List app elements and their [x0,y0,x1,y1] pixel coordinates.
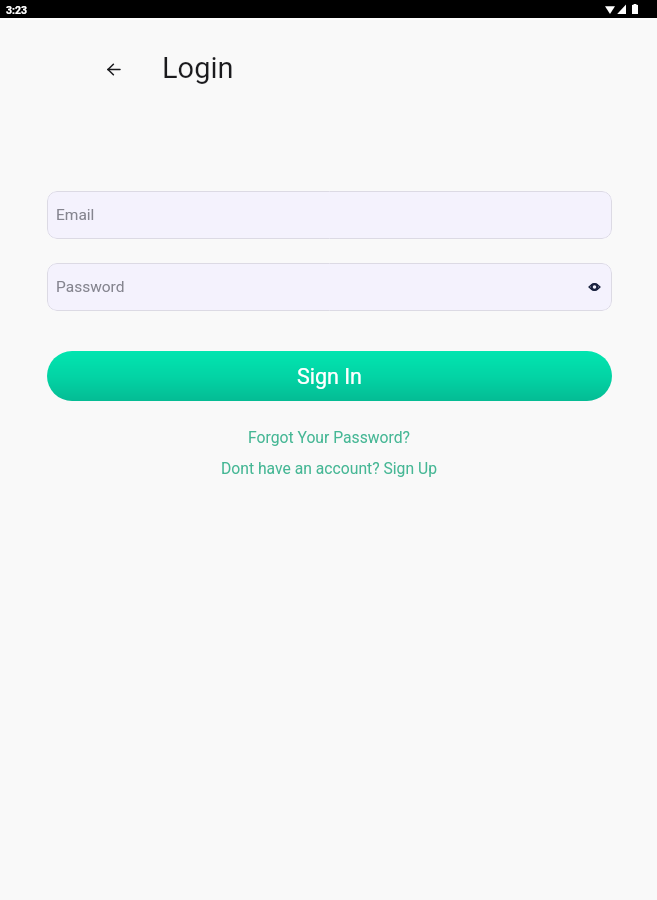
staticText: Dont have an account? Sign Up [221,459,437,477]
staticText: Login [162,51,234,85]
button[interactable]: Sign In [47,351,612,401]
button[interactable]: Show password [579,272,609,302]
button[interactable]: Password [47,263,612,311]
staticText: Forgot Your Password? [248,428,410,446]
button[interactable]: Dont have an account? Sign Up [0,455,657,481]
staticText: Sign In [297,364,362,389]
staticText: Email [56,206,95,224]
staticText: 3:23 [6,4,28,16]
staticText: Password [56,278,125,296]
button[interactable]: Back [95,50,133,88]
button[interactable]: Forgot Your Password? [0,424,657,450]
button[interactable]: Email [47,191,612,239]
